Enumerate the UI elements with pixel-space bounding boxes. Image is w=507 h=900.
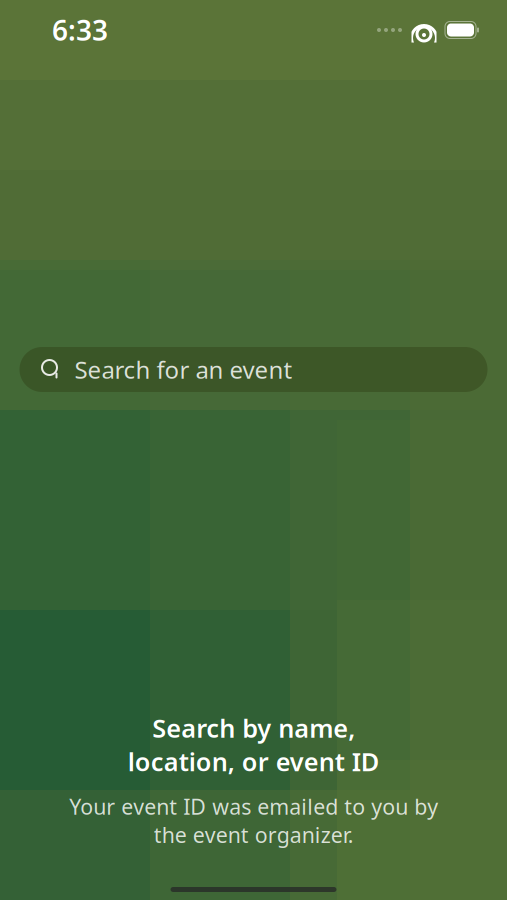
staticText: Your event ID was emailed to you by the … [69, 792, 438, 849]
staticText: Search by name, location, or event ID [127, 711, 379, 778]
staticText: 6:33 [52, 11, 108, 49]
button[interactable]: Search for an event [19, 347, 487, 392]
staticText: Search for an event [74, 354, 292, 385]
